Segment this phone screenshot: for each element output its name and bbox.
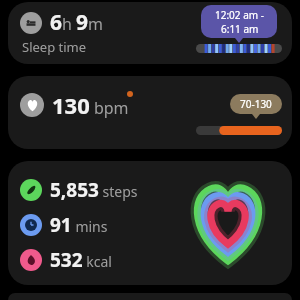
staticText: 6h 9m [50, 8, 104, 37]
staticText: 130 bpm [52, 90, 129, 120]
other: Steps [20, 179, 42, 201]
staticText: Sleep time [22, 38, 87, 56]
staticText: 5,853 steps [50, 177, 138, 203]
staticText: 532 kcal [50, 247, 112, 273]
staticText: 12:02 am - [215, 8, 264, 22]
button[interactable]: Heart rate [8, 76, 292, 149]
button[interactable]: Sleep [8, 2, 292, 64]
staticText: 6:11 am [221, 22, 259, 36]
staticText: 70-130 [240, 97, 272, 111]
other: Active minutes [20, 214, 42, 236]
other: Sleep [20, 12, 42, 34]
button[interactable]: Steps [8, 161, 292, 285]
other: Calories [20, 249, 42, 271]
other: Heart rate [20, 93, 44, 117]
staticText: 91 mins [50, 212, 108, 238]
